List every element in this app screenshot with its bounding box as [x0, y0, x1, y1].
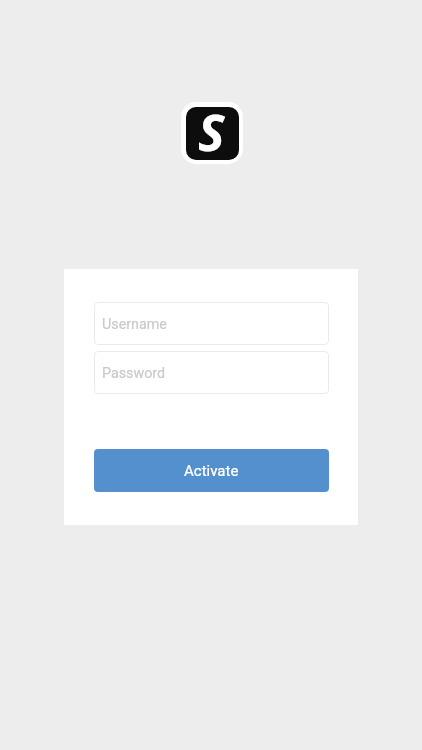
button[interactable]: Password — [94, 351, 329, 394]
other: App logo — [181, 102, 243, 164]
staticText: Username — [102, 316, 167, 333]
staticText: Password — [102, 365, 166, 382]
button[interactable]: Activate — [94, 449, 329, 492]
button[interactable]: Username — [94, 302, 329, 345]
staticText: S — [198, 102, 225, 164]
staticText: Activate — [184, 462, 239, 480]
